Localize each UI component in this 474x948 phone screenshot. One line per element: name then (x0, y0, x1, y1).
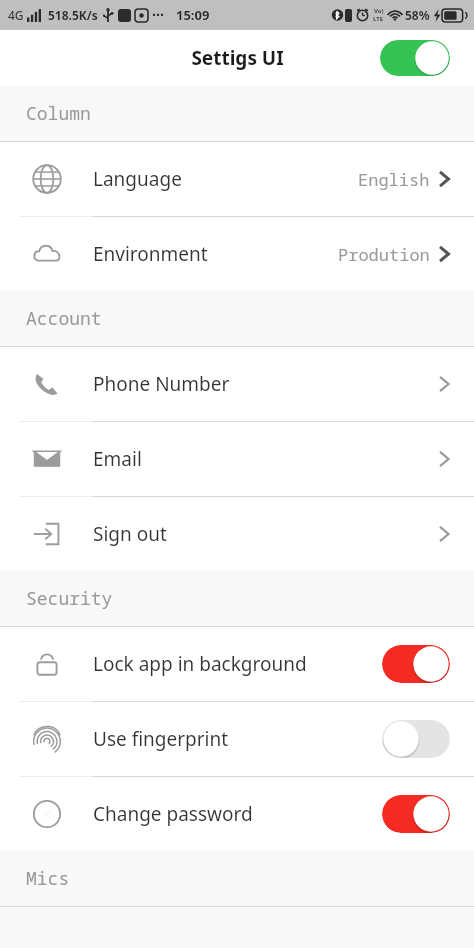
button[interactable]: Change password (0, 777, 474, 851)
staticText: 15:09 (176, 6, 210, 24)
button[interactable]: Email (0, 422, 474, 496)
staticText: 58% (405, 7, 430, 23)
staticText: Prodution (338, 243, 430, 266)
staticText: LTE (373, 15, 384, 23)
staticText: Use fingerprint (93, 726, 229, 752)
staticText: Environment (93, 241, 208, 267)
staticText: Mics (26, 866, 70, 891)
button[interactable]: Change password (382, 795, 450, 833)
button[interactable]: Lock app in background (382, 645, 450, 683)
staticText: Phone Number (93, 371, 230, 397)
staticText: Settigs UI (191, 45, 284, 71)
button[interactable]: Phone Number (0, 347, 474, 421)
staticText: Sign out (93, 521, 167, 547)
staticText: ⋯ (152, 8, 164, 22)
staticText: Email (93, 446, 142, 472)
staticText: 4G (8, 7, 24, 23)
button[interactable]: Language (0, 142, 474, 216)
staticText: English (358, 168, 430, 191)
staticText: Column (26, 101, 91, 126)
staticText: 518.5K/s (48, 7, 98, 23)
staticText: Lock app in background (93, 651, 307, 677)
staticText: Security (26, 586, 113, 611)
staticText: Account (26, 306, 102, 331)
staticText: Language (93, 166, 182, 192)
staticText: Vo) (374, 7, 384, 15)
staticText: Change password (93, 801, 253, 827)
button[interactable]: Environment (0, 217, 474, 291)
button[interactable]: Use fingerprint (0, 702, 474, 776)
button[interactable]: Sign out (0, 497, 474, 571)
button[interactable]: Use fingerprint (382, 720, 450, 758)
button[interactable]: Lock app in background (0, 627, 474, 701)
button[interactable]: Toggle settings (380, 40, 450, 76)
